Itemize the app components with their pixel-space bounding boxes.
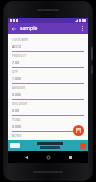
staticText: PRODUCT — [12, 54, 26, 58]
staticText: 7.00 — [12, 60, 19, 65]
staticText: DISCOUNT — [12, 102, 28, 106]
button[interactable]: Back — [10, 25, 17, 32]
staticText: NOTES — [12, 134, 22, 138]
staticText: TOTAL — [12, 118, 21, 122]
button[interactable]: Home — [44, 153, 52, 161]
staticText: AMOUNT — [12, 86, 26, 90]
staticText: 0.006 — [12, 92, 21, 97]
button[interactable]: TOTAL — [12, 116, 84, 132]
button[interactable]: DISCOUNT — [12, 100, 84, 116]
button[interactable]: Back — [22, 153, 30, 161]
staticText: ACCO — [12, 44, 22, 49]
staticText: QTY — [12, 70, 18, 74]
button[interactable]: NOTES — [12, 132, 84, 138]
button[interactable]: QTY — [12, 68, 84, 84]
button[interactable]: AMOUNT — [12, 84, 84, 100]
button[interactable]: Ad — [8, 140, 88, 151]
staticText: 0.000 — [12, 124, 21, 129]
staticText: sample — [20, 25, 38, 32]
button[interactable]: PRODUCT — [12, 52, 84, 68]
button[interactable]: Save — [73, 125, 84, 136]
button[interactable]: CUSTOMER — [12, 36, 84, 52]
staticText: 1.000 — [12, 76, 21, 81]
button[interactable]: More options — [79, 25, 86, 32]
other: Ad — [80, 143, 86, 149]
staticText: 0.00 — [12, 108, 19, 113]
staticText: CUSTOMER — [12, 38, 28, 42]
button[interactable]: Recent apps — [66, 153, 74, 161]
